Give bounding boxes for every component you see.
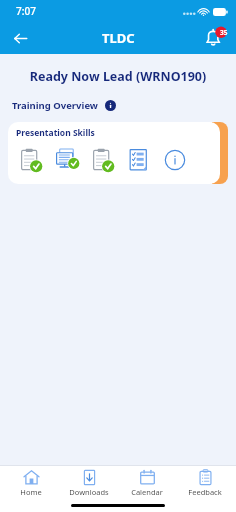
button[interactable]: Notifications, 35 unread <box>200 23 230 53</box>
button[interactable]: Checklist <box>124 145 154 175</box>
button[interactable]: More information <box>160 145 190 175</box>
staticText: Home <box>20 487 42 497</box>
staticText: TLDC <box>102 29 135 47</box>
button[interactable]: Feedback <box>178 466 232 499</box>
button[interactable]: Assessment complete <box>16 145 46 175</box>
other: Information <box>105 100 116 111</box>
staticText: Ready Now Lead (WRNO190) <box>0 68 236 85</box>
button[interactable]: E-learning complete <box>52 145 82 175</box>
staticText: 35 <box>220 28 228 37</box>
staticText: Calendar <box>131 487 163 497</box>
button[interactable]: Training Overview <box>12 99 236 112</box>
staticText: Downloads <box>69 487 109 497</box>
staticText: Feedback <box>188 487 222 497</box>
staticText: Training Overview <box>12 99 98 112</box>
button[interactable]: Home <box>4 466 58 499</box>
staticText: Presentation Skills <box>16 127 95 139</box>
staticText: 7:07 <box>16 4 36 18</box>
button[interactable]: Calendar <box>120 466 174 499</box>
button[interactable]: Document complete <box>88 145 118 175</box>
button[interactable]: Presentation Skills <box>8 122 220 184</box>
button[interactable]: Back <box>6 24 34 52</box>
button[interactable]: Downloads <box>62 466 116 499</box>
